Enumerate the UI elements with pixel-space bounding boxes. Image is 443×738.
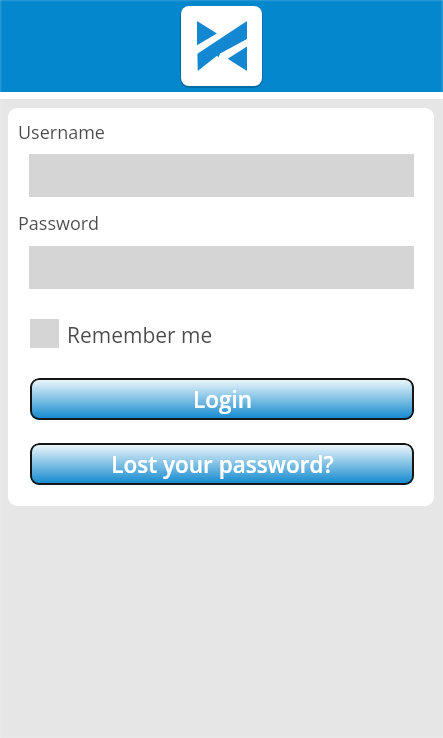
button[interactable]: App logo	[181, 6, 262, 86]
staticText: Login	[193, 384, 252, 415]
staticText: Password	[18, 211, 100, 236]
staticText: Remember me	[67, 321, 213, 350]
button[interactable]: Lost your password?	[30, 443, 414, 485]
button[interactable]: Login	[30, 378, 414, 420]
button[interactable]: Remember me	[29, 313, 211, 355]
staticText: Lost your password?	[111, 449, 334, 480]
staticText: Username	[18, 120, 105, 145]
